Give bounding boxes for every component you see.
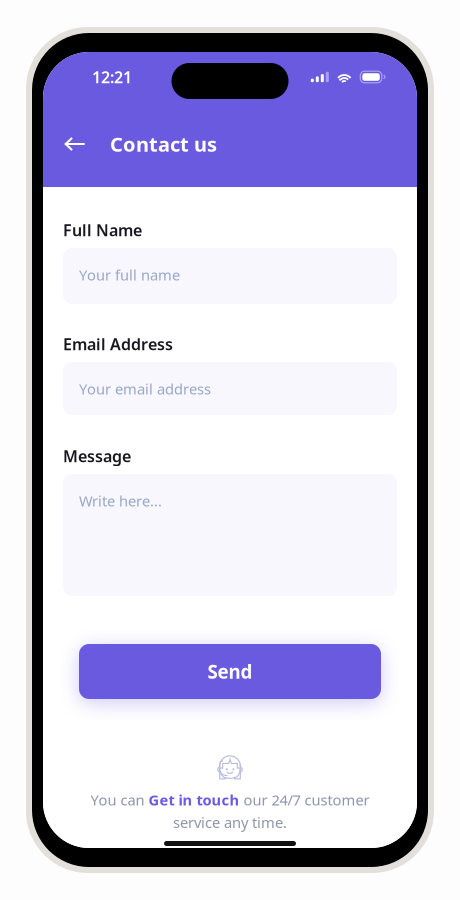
staticText: service any time. [173,812,287,832]
staticText: Write here... [79,491,162,510]
staticText: Message [63,445,131,467]
staticText: Get in touch [148,790,239,809]
staticText: Your email address [79,379,211,398]
staticText: our 24/7 customer [239,790,369,809]
button[interactable]: Your full name [63,248,397,304]
button[interactable]: Back [60,127,90,161]
staticText: Contact us [110,131,217,157]
staticText: Your full name [79,265,180,284]
staticText: You can [90,790,148,809]
staticText: Email Address [63,333,173,355]
button[interactable]: Write here... [63,474,397,596]
staticText: 12:21 [92,66,132,88]
staticText: Full Name [63,219,142,241]
button[interactable]: Send [79,644,381,699]
button[interactable]: Get in touch [148,790,239,809]
staticText: Send [207,659,252,684]
button[interactable]: Your email address [63,362,397,415]
